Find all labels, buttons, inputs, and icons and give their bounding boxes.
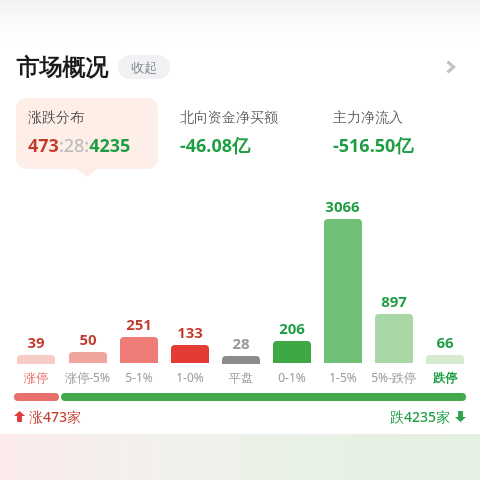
staticText: 0-1% <box>278 369 306 385</box>
staticText: 市场概况 <box>16 53 108 82</box>
staticText: -46.08亿 <box>180 133 251 158</box>
staticText: 主力净流入 <box>333 109 403 127</box>
staticText: 平盘 <box>229 370 253 385</box>
staticText: 涨473家 <box>29 407 82 426</box>
staticText: 跌4235家 <box>390 407 451 426</box>
staticText: 1-0% <box>176 369 204 385</box>
button[interactable]: 收起 <box>118 55 170 79</box>
staticText: 北向资金净买额 <box>180 109 278 127</box>
staticText: 133 <box>177 322 203 342</box>
staticText: -516.50亿 <box>333 133 414 158</box>
staticText: 50 <box>79 329 97 349</box>
staticText: 206 <box>279 318 305 338</box>
staticText: 251 <box>126 314 152 334</box>
button[interactable]: 展开更多 <box>436 53 464 81</box>
staticText: 5-1% <box>125 369 153 385</box>
staticText: 28 <box>232 333 250 353</box>
staticText: 涨停-5% <box>65 369 110 385</box>
staticText: 跌停 <box>433 370 457 385</box>
button[interactable]: 主力净流入 <box>322 98 464 169</box>
button[interactable]: 北向资金净买额 <box>169 98 311 169</box>
button[interactable]: 涨跌分布 <box>16 98 158 169</box>
staticText: 39 <box>27 332 45 352</box>
staticText: 3066 <box>325 196 360 216</box>
staticText: 涨跌分布 <box>28 109 84 127</box>
staticText: 1-5% <box>329 369 357 385</box>
staticText: 5%-跌停 <box>371 369 416 385</box>
staticText: 473:28:4235 <box>28 133 131 158</box>
staticText: 涨停 <box>24 370 48 385</box>
staticText: 66 <box>436 332 454 352</box>
staticText: 收起 <box>131 59 157 75</box>
staticText: 897 <box>381 291 407 311</box>
